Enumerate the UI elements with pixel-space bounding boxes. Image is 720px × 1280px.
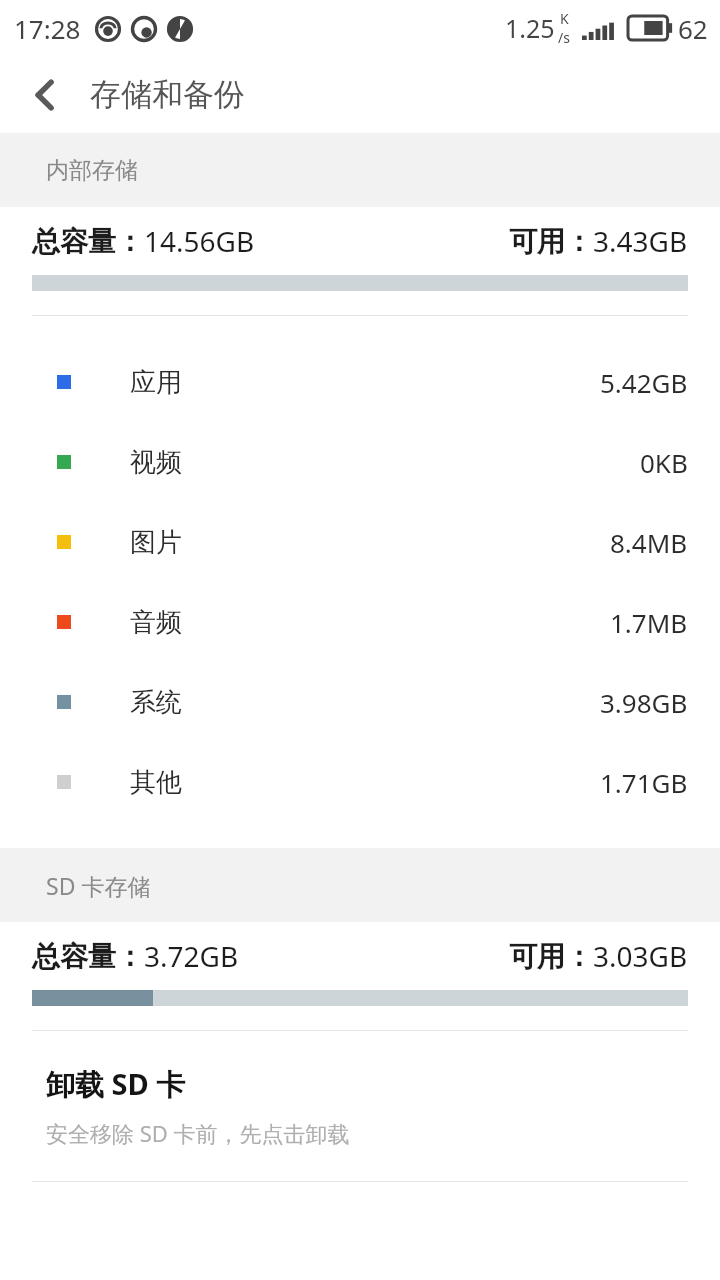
button[interactable]: 应用 [0,342,720,422]
staticText: 14.56GB [144,222,255,260]
button[interactable]: 系统 [0,662,720,742]
staticText: 音频 [130,606,182,639]
staticText: 1.71GB [600,765,688,800]
button[interactable]: 图片 [0,502,720,582]
staticText: /s [558,28,570,47]
staticText: 图片 [130,526,182,559]
staticText: 应用 [130,366,182,399]
button[interactable]: 视频 [0,422,720,502]
staticText: 8.4MB [610,525,688,560]
staticText: 卸载 SD 卡 [46,1064,186,1104]
staticText: 62 [678,11,708,46]
staticText: 内部存储 [46,156,138,185]
staticText: 其他 [130,766,182,799]
button[interactable]: 卸载 SD 卡 [0,1031,720,1181]
staticText: SD 卡存储 [46,870,151,901]
staticText: 3.72GB [144,937,239,975]
button[interactable]: 其他 [0,742,720,822]
staticText: 1.7MB [610,605,688,640]
button[interactable]: Back [0,56,90,133]
staticText: 安全移除 SD 卡前，先点击卸载 [46,1118,350,1148]
staticText: 3.98GB [600,685,688,720]
staticText: 视频 [130,446,182,479]
staticText: 17:28 [14,11,81,46]
staticText: 5.42GB [600,365,688,400]
staticText: 0KB [640,445,688,480]
staticText: K [560,9,569,28]
staticText: 可用： [509,224,593,259]
staticText: 存储和备份 [90,75,245,114]
button[interactable]: 音频 [0,582,720,662]
staticText: 总容量： [32,224,144,259]
staticText: 总容量： [32,939,144,974]
staticText: 可用： [509,939,593,974]
staticText: 1.25 [505,11,555,45]
staticText: 3.03GB [593,937,688,975]
staticText: 3.43GB [593,222,688,260]
staticText: 系统 [130,686,182,719]
